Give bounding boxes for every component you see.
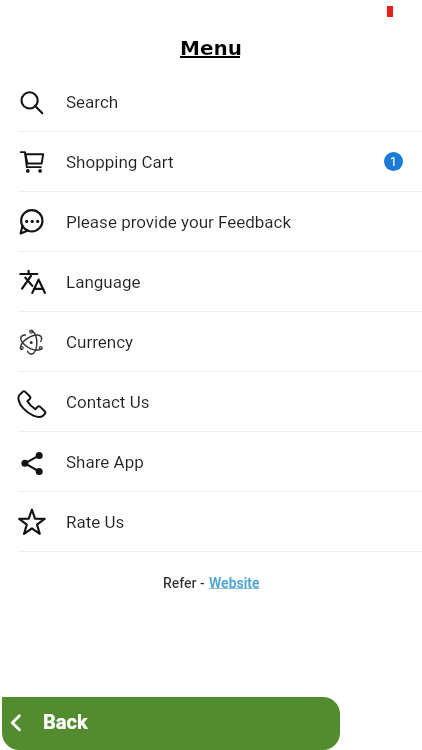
button[interactable]: Language xyxy=(0,252,422,312)
staticText: Shopping Cart xyxy=(66,152,174,172)
button[interactable]: Contact Us xyxy=(0,372,422,432)
staticText: Currency xyxy=(66,332,134,352)
button[interactable]: Shopping Cart xyxy=(0,132,422,192)
staticText: Search xyxy=(66,92,119,112)
staticText: Refer - xyxy=(163,575,209,591)
staticText: Rate Us xyxy=(66,512,125,532)
button[interactable]: Share App xyxy=(0,432,422,492)
button[interactable]: Rate Us xyxy=(0,492,422,552)
staticText: Language xyxy=(66,272,141,292)
staticText: Please provide your Feedback xyxy=(66,212,292,232)
button[interactable]: Back xyxy=(2,697,340,750)
other: Back xyxy=(2,697,340,750)
staticText: Back xyxy=(43,710,88,733)
staticText: 1 xyxy=(390,155,397,169)
staticText: Contact Us xyxy=(66,392,150,412)
staticText: Share App xyxy=(66,452,144,472)
button[interactable]: Search xyxy=(0,72,422,132)
staticText: Menu xyxy=(0,36,422,59)
button[interactable]: Please provide your Feedback xyxy=(0,192,422,252)
button[interactable]: Website xyxy=(209,575,260,591)
button[interactable]: Currency xyxy=(0,312,422,372)
